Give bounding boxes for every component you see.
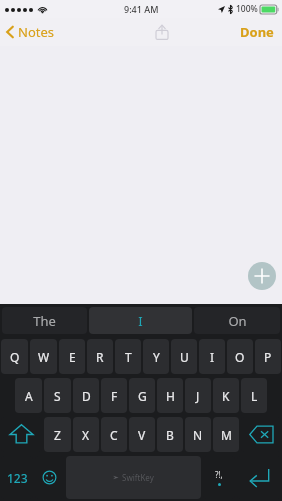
staticText: K bbox=[222, 388, 230, 404]
button[interactable]: P bbox=[255, 339, 281, 374]
staticText: I bbox=[138, 312, 143, 330]
staticText: ?!, bbox=[215, 469, 223, 480]
staticText: S bbox=[54, 388, 61, 404]
button[interactable]: C bbox=[101, 417, 127, 452]
button[interactable]: J bbox=[185, 378, 211, 413]
staticText: E bbox=[69, 349, 76, 365]
button[interactable]: G bbox=[129, 378, 155, 413]
button[interactable]: B bbox=[157, 417, 183, 452]
button[interactable]: 123 bbox=[1, 456, 33, 499]
staticText: B bbox=[166, 427, 174, 443]
button[interactable]: Share bbox=[152, 22, 172, 42]
button[interactable]: SwiftKey bbox=[66, 456, 201, 499]
button[interactable]: Shift bbox=[1, 417, 42, 452]
button[interactable]: F bbox=[101, 378, 127, 413]
button[interactable]: D bbox=[73, 378, 99, 413]
staticText: C bbox=[110, 427, 118, 443]
button[interactable]: W bbox=[30, 339, 57, 374]
staticText: SwiftKey bbox=[122, 472, 154, 483]
button[interactable]: Z bbox=[44, 417, 71, 452]
button[interactable]: Done bbox=[240, 23, 274, 41]
button[interactable]: Backspace bbox=[241, 417, 281, 452]
button[interactable]: Y bbox=[143, 339, 169, 374]
staticText: H bbox=[166, 388, 175, 404]
staticText: Done bbox=[240, 23, 274, 41]
staticText: P bbox=[264, 349, 272, 365]
button[interactable]: Return bbox=[237, 456, 281, 499]
button[interactable]: Symbols bbox=[203, 456, 235, 499]
staticText: U bbox=[180, 349, 189, 365]
staticText: V bbox=[138, 427, 146, 443]
button[interactable]: N bbox=[185, 417, 211, 452]
staticText: O bbox=[235, 349, 245, 365]
button[interactable]: I bbox=[89, 307, 192, 334]
staticText: T bbox=[125, 349, 132, 365]
button[interactable]: New note bbox=[248, 262, 276, 290]
staticText: D bbox=[82, 388, 91, 404]
staticText: Q bbox=[10, 349, 20, 365]
button[interactable]: E bbox=[59, 339, 85, 374]
button[interactable]: U bbox=[171, 339, 197, 374]
staticText: J bbox=[196, 388, 200, 404]
staticText: R bbox=[96, 349, 104, 365]
button[interactable]: S bbox=[44, 378, 71, 413]
button[interactable]: O bbox=[227, 339, 253, 374]
staticText: The bbox=[33, 312, 56, 330]
staticText: G bbox=[138, 388, 147, 404]
staticText: W bbox=[38, 349, 50, 365]
staticText: Z bbox=[54, 427, 61, 443]
button[interactable]: X bbox=[73, 417, 99, 452]
staticText: 100% bbox=[236, 3, 258, 15]
button[interactable]: K bbox=[213, 378, 239, 413]
button[interactable]: On bbox=[194, 307, 280, 334]
button[interactable]: L bbox=[241, 378, 267, 413]
staticText: A bbox=[25, 388, 33, 404]
staticText: L bbox=[251, 388, 258, 404]
button[interactable]: Notes bbox=[6, 23, 54, 41]
button[interactable]: Emoji bbox=[35, 456, 64, 499]
button[interactable]: T bbox=[115, 339, 141, 374]
button[interactable]: V bbox=[129, 417, 155, 452]
staticText: M bbox=[221, 427, 232, 443]
staticText: N bbox=[193, 427, 203, 443]
staticText: On bbox=[228, 312, 247, 330]
staticText: Y bbox=[153, 349, 160, 365]
staticText: Notes bbox=[18, 23, 54, 41]
staticText: F bbox=[111, 388, 118, 404]
staticText: I bbox=[210, 349, 215, 365]
staticText: 9:41 AM bbox=[124, 3, 159, 15]
button[interactable]: R bbox=[87, 339, 113, 374]
button[interactable]: I bbox=[199, 339, 225, 374]
staticText: 123 bbox=[7, 470, 28, 486]
staticText: X bbox=[82, 427, 90, 443]
button[interactable]: A bbox=[15, 378, 42, 413]
button[interactable]: M bbox=[213, 417, 239, 452]
button[interactable]: H bbox=[157, 378, 183, 413]
button[interactable]: Q bbox=[1, 339, 28, 374]
button[interactable]: The bbox=[2, 307, 87, 334]
